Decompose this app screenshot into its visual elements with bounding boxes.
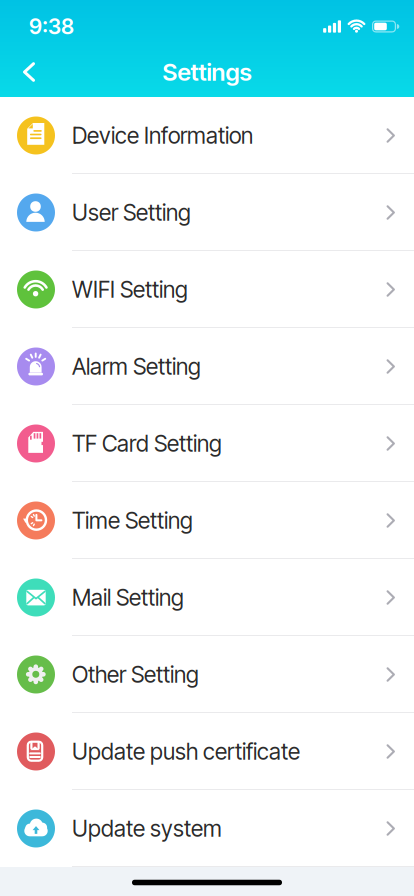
staticText: TF Card Setting (72, 430, 222, 457)
staticText: Update push certificate (72, 738, 300, 765)
staticText: Update system (72, 815, 222, 842)
button[interactable]: Back (0, 54, 47, 90)
button[interactable]: Update push certificate (0, 713, 414, 790)
button[interactable]: User Setting (0, 174, 414, 251)
staticText: User Setting (72, 199, 191, 226)
button[interactable]: Device Information (0, 97, 414, 174)
staticText: Other Setting (72, 661, 199, 688)
staticText: 9:38 (29, 14, 74, 39)
button[interactable]: Mail Setting (0, 559, 414, 636)
button[interactable]: Update system (0, 790, 414, 867)
staticText: Time Setting (72, 507, 193, 534)
button[interactable]: Other Setting (0, 636, 414, 713)
staticText: WIFI Setting (72, 276, 188, 303)
button[interactable]: Time Setting (0, 482, 414, 559)
button[interactable]: WIFI Setting (0, 251, 414, 328)
staticText: Alarm Setting (72, 353, 201, 380)
button[interactable]: TF Card Setting (0, 405, 414, 482)
staticText: Mail Setting (72, 584, 184, 611)
button[interactable]: Alarm Setting (0, 328, 414, 405)
staticText: Device Information (72, 122, 253, 149)
staticText: Settings (162, 58, 251, 86)
